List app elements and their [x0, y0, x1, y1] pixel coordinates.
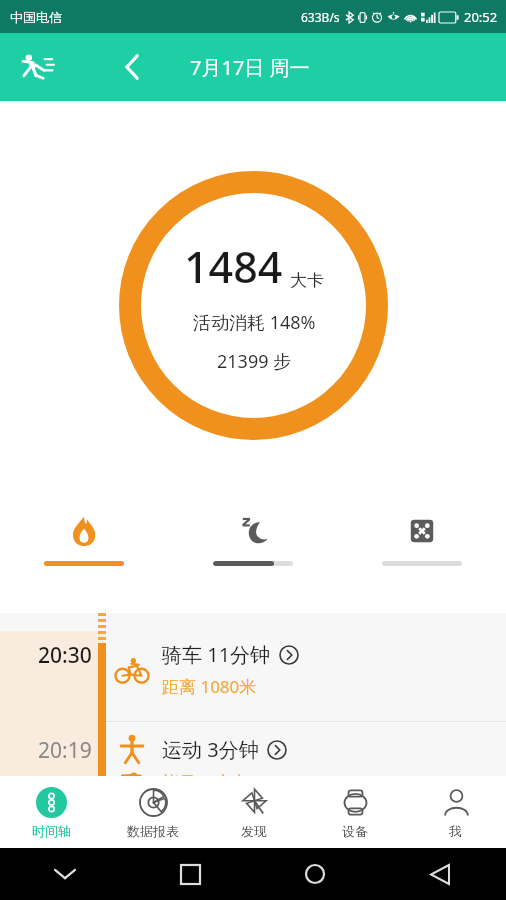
button[interactable]: Back [417, 851, 463, 897]
staticText: 21399 步 [217, 349, 292, 374]
button[interactable]: Recent apps [167, 851, 213, 897]
staticText: 7月17日 周一 [190, 54, 310, 81]
staticText: 20:52 [464, 8, 498, 26]
button[interactable]: 我 [405, 776, 506, 848]
staticText: 数据报表 [127, 823, 179, 839]
button[interactable]: 数据报表 [102, 776, 203, 848]
button[interactable]: Hide keyboard [42, 851, 88, 897]
staticText: 设备 [342, 823, 368, 839]
staticText: 运动 3分钟 [162, 736, 259, 763]
button[interactable]: 20:30 [0, 627, 506, 713]
staticText: 20:30 [38, 641, 92, 670]
staticText: 时间轴 [32, 823, 71, 839]
staticText: 距离 1080米 [162, 675, 257, 698]
staticText: 633B/s [301, 9, 340, 25]
button[interactable]: Activity [12, 43, 60, 91]
button[interactable]: Activity tab [337, 501, 506, 613]
staticText: 骑车 11分钟 [162, 641, 271, 668]
staticText: 我 [449, 823, 462, 839]
staticText: 中国电信 [10, 9, 62, 25]
button[interactable]: 设备 [304, 776, 405, 848]
button[interactable]: Back [108, 43, 156, 91]
staticText: 大卡 [290, 270, 324, 291]
button[interactable]: 时间轴 [0, 776, 102, 848]
button[interactable]: Home [292, 851, 338, 897]
staticText: 1484 [184, 237, 283, 296]
button[interactable]: Sleep tab [168, 501, 337, 613]
staticText: 发现 [241, 823, 267, 839]
staticText: 能量 3 大卡 [162, 770, 249, 776]
button[interactable]: Calories tab [0, 501, 168, 613]
staticText: 20:19 [38, 736, 92, 765]
button[interactable]: 20:19 [0, 722, 506, 776]
staticText: 活动消耗 148% [193, 310, 316, 335]
button[interactable]: 发现 [203, 776, 304, 848]
